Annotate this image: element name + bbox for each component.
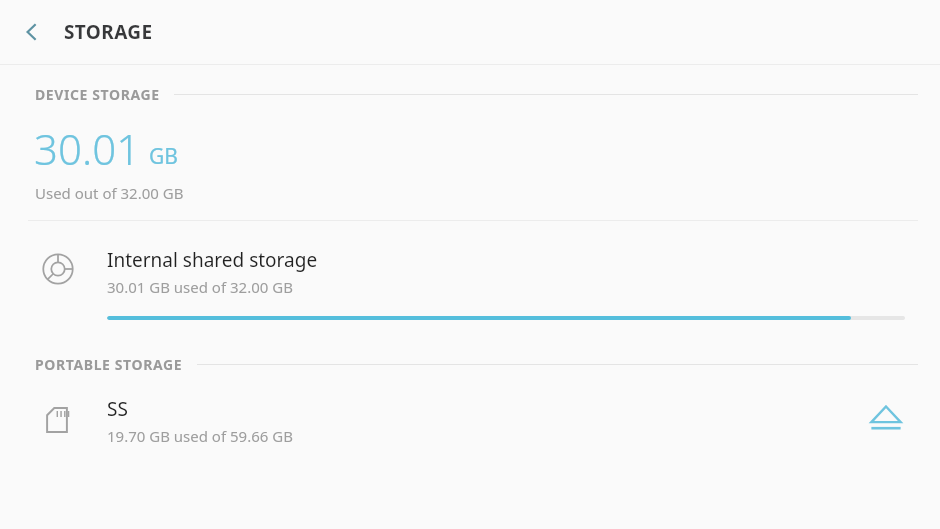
button[interactable]: Eject SD card — [860, 392, 912, 444]
button[interactable]: Back — [0, 0, 64, 64]
staticText: 30.01 — [34, 120, 141, 177]
button[interactable]: SS — [0, 374, 940, 470]
staticText: DEVICE STORAGE — [35, 85, 160, 104]
staticText: 19.70 GB used of 59.66 GB — [107, 426, 293, 446]
staticText: Used out of 32.00 GB — [35, 183, 184, 203]
staticText: SS — [107, 396, 128, 422]
staticText: 30.01 GB used of 32.00 GB — [107, 277, 293, 297]
staticText: STORAGE — [64, 19, 153, 45]
staticText: GB — [149, 142, 178, 171]
staticText: Internal shared storage — [107, 247, 318, 273]
staticText: PORTABLE STORAGE — [35, 355, 183, 374]
button[interactable]: Internal shared storage — [0, 221, 940, 335]
